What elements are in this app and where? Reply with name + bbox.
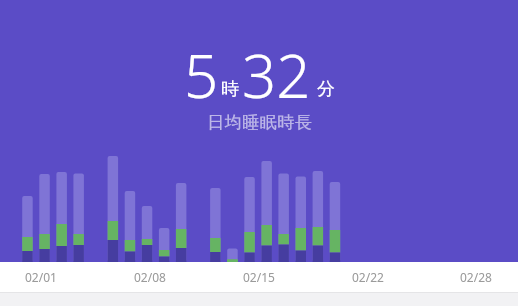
staticText: 5 xyxy=(184,34,219,116)
staticText: 02/15 xyxy=(243,269,275,285)
button[interactable]: 02/28 xyxy=(436,262,516,292)
button[interactable]: 02/22 xyxy=(328,262,408,292)
button[interactable]: 02/01 xyxy=(1,262,81,292)
staticText: 分 xyxy=(317,78,335,101)
staticText: 02/08 xyxy=(134,269,166,285)
staticText: 02/28 xyxy=(460,269,492,285)
button[interactable]: 02/08 xyxy=(110,262,190,292)
button[interactable]: 02/15 xyxy=(219,262,299,292)
staticText: 02/01 xyxy=(25,269,57,285)
staticText: 日均睡眠時長 xyxy=(207,112,312,133)
staticText: 02/22 xyxy=(352,269,384,285)
staticText: 32 xyxy=(242,34,311,116)
staticText: 時 xyxy=(221,78,239,101)
